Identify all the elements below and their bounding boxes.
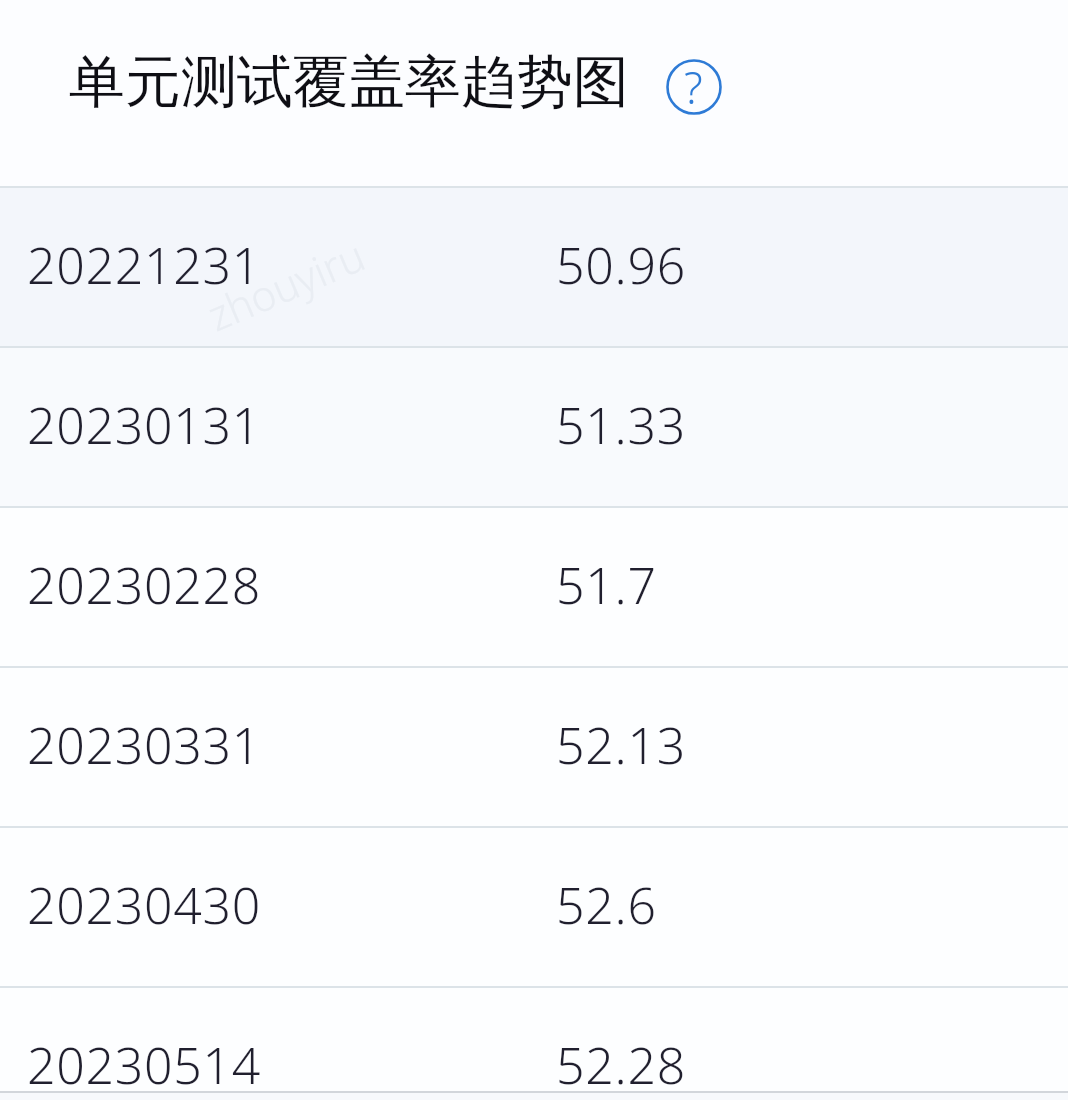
staticText: 单元测试覆盖率趋势图 [69, 47, 629, 118]
staticText: 20230131 [27, 391, 261, 459]
button[interactable]: 20230131 [0, 346, 1068, 506]
button[interactable]: 20230331 [0, 666, 1068, 826]
button[interactable]: Help [662, 55, 726, 119]
staticText: 52.28 [556, 1031, 686, 1099]
staticText: 52.13 [556, 711, 686, 779]
staticText: 20230514 [27, 1031, 261, 1099]
staticText: 20230331 [27, 711, 261, 779]
staticText: 20230228 [27, 551, 261, 619]
button[interactable]: 20230228 [0, 506, 1068, 666]
staticText: 51.33 [556, 391, 686, 459]
button[interactable]: 20230430 [0, 826, 1068, 986]
staticText: 50.96 [556, 231, 686, 299]
button[interactable]: zhouyiru [0, 186, 1068, 346]
button[interactable]: 20230514 [0, 986, 1068, 1100]
staticText: 20230430 [27, 871, 261, 939]
staticText: ? [684, 57, 703, 117]
staticText: 20221231 [27, 231, 261, 299]
staticText: 52.6 [556, 871, 657, 939]
staticText: 51.7 [556, 551, 657, 619]
staticText: zhouyiru [198, 226, 374, 343]
